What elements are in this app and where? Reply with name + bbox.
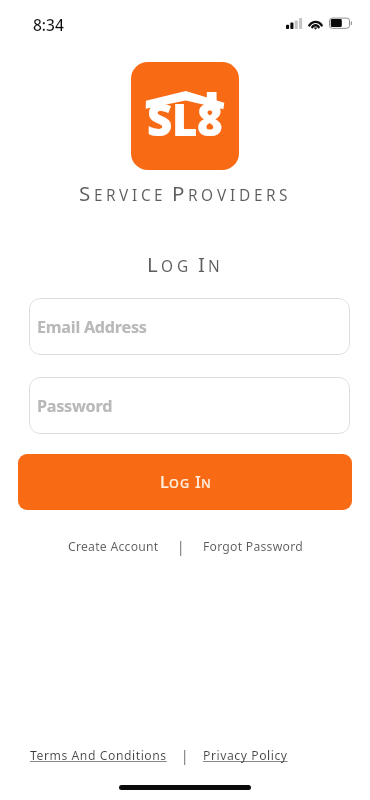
staticText: Privacy Policy (203, 747, 288, 764)
staticText: V (119, 185, 132, 206)
staticText: Terms And Conditions (30, 747, 167, 764)
staticText: I (195, 471, 201, 493)
staticText: E (154, 185, 166, 206)
staticText: E (94, 185, 106, 206)
staticText: P (172, 179, 188, 207)
staticText: S (279, 185, 291, 206)
staticText: D (239, 185, 254, 206)
button[interactable]: Password (29, 377, 350, 434)
staticText: V (217, 185, 230, 206)
staticText: Password (37, 395, 113, 417)
staticText: | (181, 747, 189, 765)
staticText: 8:34 (33, 14, 64, 35)
staticText: I (132, 185, 141, 206)
staticText: G (177, 256, 192, 277)
button[interactable]: Terms And Conditions (27, 742, 170, 769)
staticText: N (208, 256, 223, 277)
staticText: R (188, 185, 201, 206)
staticText: I (230, 185, 239, 206)
staticText: O (169, 475, 180, 492)
staticText: N (201, 475, 211, 492)
staticText: SL8 (147, 89, 223, 149)
staticText: R (266, 185, 279, 206)
button[interactable]: Privacy Policy (200, 742, 291, 769)
staticText: C (141, 185, 154, 206)
staticText: O (161, 256, 177, 277)
staticText: Forgot Password (203, 538, 303, 555)
staticText: R (106, 185, 119, 206)
staticText: G (180, 475, 190, 492)
staticText: O (201, 185, 217, 206)
staticText: I (198, 250, 208, 278)
staticText: | (177, 538, 185, 556)
staticText: L (160, 471, 169, 493)
staticText: Create Account (68, 538, 159, 555)
button[interactable]: Create Account (64, 532, 163, 561)
button[interactable]: L (18, 454, 352, 510)
button[interactable]: Email Address (29, 298, 350, 355)
staticText: L (147, 250, 161, 278)
button[interactable]: Forgot Password (199, 532, 307, 561)
staticText: S (79, 179, 94, 207)
staticText: Email Address (37, 316, 147, 338)
staticText: E (254, 185, 266, 206)
